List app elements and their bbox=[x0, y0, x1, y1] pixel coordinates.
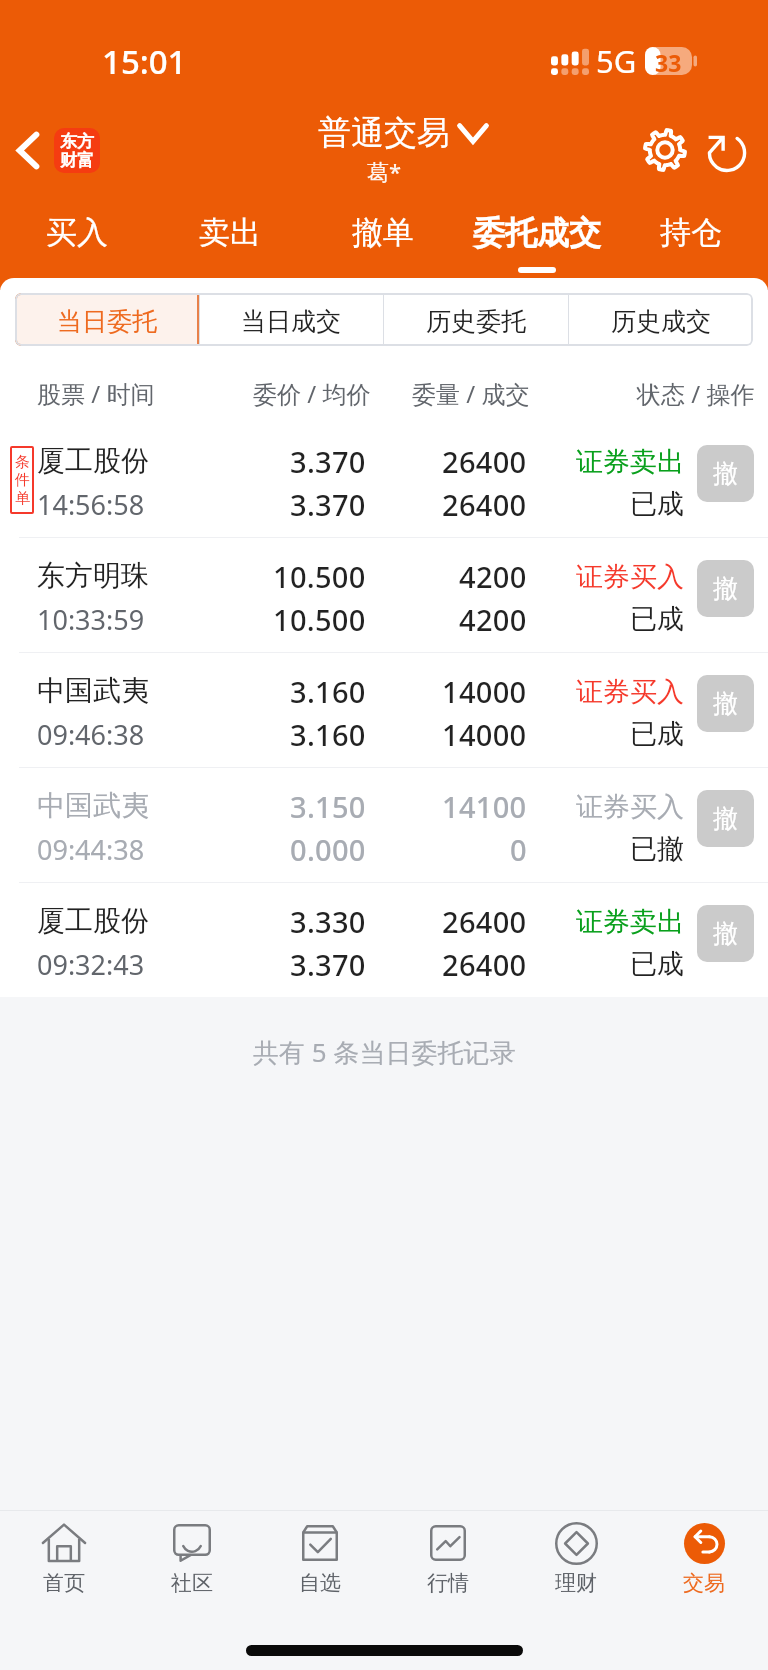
staticText: 中国武夷 bbox=[37, 788, 149, 823]
staticText: 社区 bbox=[171, 1570, 213, 1596]
staticText: 卖出 bbox=[199, 213, 261, 252]
staticText: 证券买入 bbox=[576, 790, 684, 824]
staticText: 中国武夷 bbox=[37, 673, 149, 708]
staticText: 持仓 bbox=[660, 213, 722, 252]
staticText: 0 bbox=[510, 830, 527, 869]
staticText: 厦工股份 bbox=[37, 903, 149, 938]
staticText: 理财 bbox=[555, 1570, 597, 1596]
button[interactable]: 委托成交 bbox=[460, 200, 614, 278]
staticText: 自选 bbox=[299, 1570, 341, 1596]
staticText: 行情 bbox=[427, 1570, 469, 1596]
staticText: 09:32:43 bbox=[37, 946, 145, 983]
button[interactable]: 交易 bbox=[640, 1511, 768, 1630]
staticText: 3.370 bbox=[290, 945, 366, 984]
staticText: 单 bbox=[15, 489, 30, 508]
button[interactable]: 当日委托 bbox=[15, 293, 199, 346]
staticText: 条 bbox=[15, 453, 30, 472]
button[interactable]: 持仓 bbox=[614, 200, 768, 278]
staticText: 15:01 bbox=[102, 39, 187, 84]
button[interactable]: 行情 bbox=[384, 1511, 512, 1630]
button[interactable]: 历史委托 bbox=[383, 293, 568, 346]
staticText: 10:33:59 bbox=[37, 601, 145, 638]
staticText: 09:44:38 bbox=[37, 831, 145, 868]
staticText: 证券卖出 bbox=[576, 905, 684, 939]
staticText: 4200 bbox=[459, 600, 527, 639]
staticText: 10.500 bbox=[273, 557, 366, 596]
staticText: 证券买入 bbox=[576, 560, 684, 594]
button[interactable]: 撤 bbox=[697, 445, 754, 502]
staticText: 5G bbox=[596, 40, 637, 82]
staticText: 3.150 bbox=[290, 787, 366, 826]
button[interactable]: 历史成交 bbox=[568, 293, 753, 346]
staticText: 股票 / 时间 bbox=[37, 377, 155, 410]
staticText: 4200 bbox=[459, 557, 527, 596]
staticText: 已成 bbox=[630, 487, 684, 521]
staticText: 交易 bbox=[683, 1570, 725, 1596]
button[interactable]: 撤 bbox=[697, 790, 754, 847]
staticText: 撤 bbox=[713, 803, 738, 834]
staticText: 普通交易 bbox=[318, 112, 450, 154]
button[interactable]: 东方明珠 bbox=[0, 538, 768, 652]
staticText: 葛* bbox=[367, 156, 402, 186]
button[interactable]: 撤 bbox=[697, 560, 754, 617]
staticText: 撤 bbox=[713, 918, 738, 949]
staticText: 委量 / 成交 bbox=[412, 377, 530, 410]
staticText: 14000 bbox=[442, 672, 527, 711]
staticText: 26400 bbox=[442, 945, 527, 984]
staticText: 财富 bbox=[60, 150, 94, 171]
staticText: 东方 bbox=[60, 131, 94, 152]
button[interactable]: 卖出 bbox=[153, 200, 306, 278]
staticText: 26400 bbox=[442, 442, 527, 481]
staticText: 撤单 bbox=[352, 213, 414, 252]
button[interactable]: Settings bbox=[634, 119, 696, 181]
staticText: 厦工股份 bbox=[37, 443, 149, 478]
button[interactable]: 中国武夷 bbox=[0, 768, 768, 882]
staticText: 东方明珠 bbox=[37, 558, 149, 593]
staticText: 撤 bbox=[713, 573, 738, 604]
button[interactable]: 撤单 bbox=[306, 200, 460, 278]
staticText: 3.370 bbox=[290, 442, 366, 481]
staticText: 09:46:38 bbox=[37, 716, 145, 753]
staticText: 件 bbox=[15, 471, 30, 490]
staticText: 26400 bbox=[442, 902, 527, 941]
staticText: 14:56:58 bbox=[37, 486, 145, 523]
staticText: 已成 bbox=[630, 947, 684, 981]
staticText: 证券买入 bbox=[576, 675, 684, 709]
staticText: 3.160 bbox=[290, 672, 366, 711]
staticText: 首页 bbox=[43, 1570, 85, 1596]
staticText: 3.370 bbox=[290, 485, 366, 524]
staticText: 撤 bbox=[713, 688, 738, 719]
button[interactable]: 社区 bbox=[128, 1511, 256, 1630]
button[interactable]: 厦工股份 bbox=[0, 883, 768, 997]
staticText: 26400 bbox=[442, 485, 527, 524]
staticText: 已成 bbox=[630, 717, 684, 751]
staticText: 当日成交 bbox=[241, 306, 341, 337]
staticText: 10.500 bbox=[273, 600, 366, 639]
button[interactable]: Back bbox=[9, 120, 108, 181]
staticText: 买入 bbox=[46, 213, 108, 252]
staticText: 14000 bbox=[442, 715, 527, 754]
button[interactable]: 中国武夷 bbox=[0, 653, 768, 767]
staticText: 撤 bbox=[713, 458, 738, 489]
button[interactable]: Refresh bbox=[696, 119, 758, 181]
button[interactable]: 撤 bbox=[697, 905, 754, 962]
button[interactable]: 自选 bbox=[256, 1511, 384, 1630]
staticText: 当日委托 bbox=[57, 306, 157, 337]
staticText: 共有 5 条当日委托记录 bbox=[253, 1034, 516, 1070]
staticText: 委价 / 均价 bbox=[253, 377, 371, 410]
staticText: 委托成交 bbox=[473, 213, 601, 253]
staticText: 证券卖出 bbox=[576, 445, 684, 479]
button[interactable]: 首页 bbox=[0, 1511, 128, 1630]
staticText: 历史成交 bbox=[611, 306, 711, 337]
staticText: 3.160 bbox=[290, 715, 366, 754]
staticText: 14100 bbox=[442, 787, 527, 826]
button[interactable]: 理财 bbox=[512, 1511, 640, 1630]
button[interactable]: 条 bbox=[0, 423, 768, 537]
staticText: 33 bbox=[655, 47, 682, 75]
button[interactable]: 普通交易 bbox=[318, 112, 489, 154]
button[interactable]: 撤 bbox=[697, 675, 754, 732]
button[interactable]: 买入 bbox=[0, 200, 153, 278]
staticText: 历史委托 bbox=[426, 306, 526, 337]
staticText: 状态 / 操作 bbox=[637, 377, 755, 410]
button[interactable]: 当日成交 bbox=[199, 293, 383, 346]
